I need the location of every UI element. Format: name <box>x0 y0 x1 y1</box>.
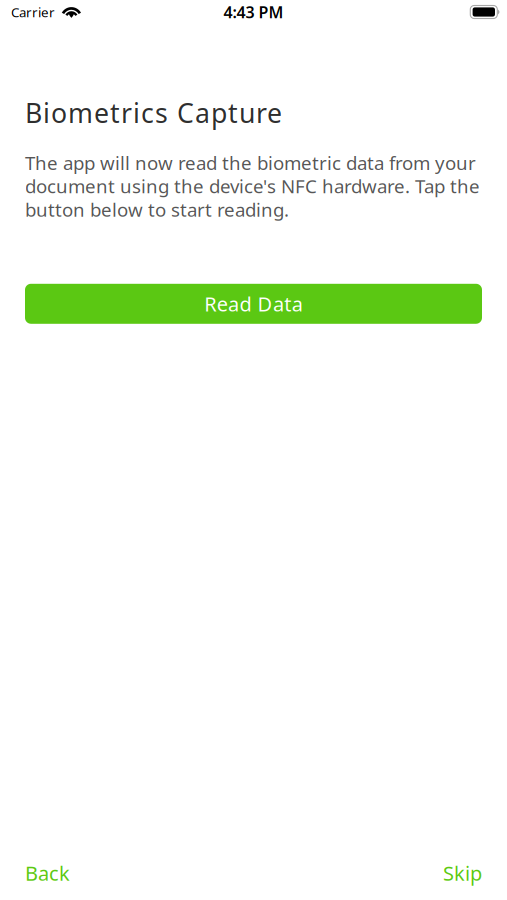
button[interactable]: Skip <box>412 856 482 890</box>
staticText: Back <box>25 860 70 886</box>
staticText: Carrier <box>11 3 55 21</box>
button[interactable]: Read Data <box>25 284 482 324</box>
button[interactable]: Back <box>25 856 95 890</box>
staticText: 4:43 PM <box>223 1 283 23</box>
staticText: Biometrics Capture <box>25 95 282 130</box>
staticText: Skip <box>443 860 482 886</box>
staticText: The app will now read the biometric data… <box>25 150 480 222</box>
staticText: Read Data <box>204 290 303 317</box>
